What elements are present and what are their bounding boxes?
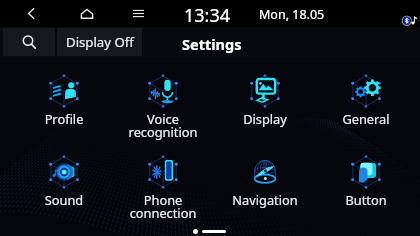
staticText: Display (215, 110, 315, 127)
button[interactable]: Profile (14, 63, 114, 137)
other: Bluetooth audio (398, 13, 418, 27)
button[interactable]: Page indicator (193, 229, 226, 234)
staticText: 13:34 (184, 3, 231, 28)
button[interactable]: Display (215, 63, 315, 137)
button[interactable]: Navigation (215, 144, 315, 218)
staticText: General (316, 110, 416, 127)
staticText: Sound (14, 191, 114, 208)
staticText: Button (316, 191, 416, 208)
button[interactable]: Sound (14, 144, 114, 218)
button[interactable]: Button (316, 144, 416, 218)
button[interactable]: General (316, 63, 416, 137)
staticText: Profile (14, 110, 114, 127)
staticText: Phone connection (113, 191, 213, 222)
staticText: Mon, 18.05 (259, 6, 325, 23)
staticText: Voice recognition (113, 110, 213, 141)
staticText: Settings (182, 34, 242, 54)
button[interactable]: Search (3, 28, 55, 56)
button[interactable]: Display Off (57, 28, 142, 56)
button[interactable]: Home (71, 0, 103, 27)
staticText: Display Off (66, 33, 134, 51)
button[interactable]: Voice recognition (113, 63, 213, 137)
staticText: Navigation (215, 191, 315, 208)
button[interactable]: Phone connection (113, 144, 213, 218)
button[interactable]: Back (16, 0, 46, 27)
button[interactable]: Menu (123, 0, 153, 27)
